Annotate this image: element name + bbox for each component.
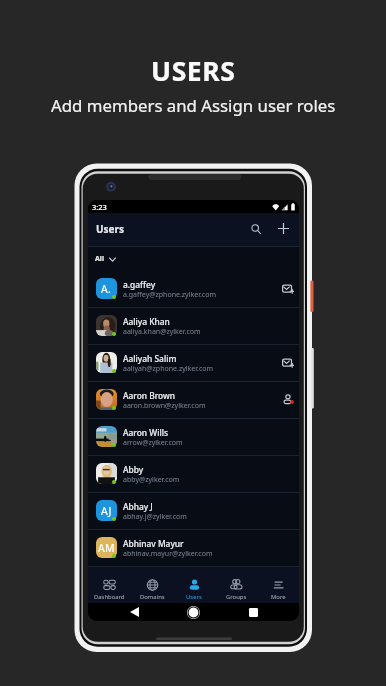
button[interactable]: Invite by email: [280, 355, 296, 371]
button[interactable]: Search: [245, 218, 267, 240]
button[interactable]: Back: [124, 603, 144, 621]
button[interactable]: AM: [88, 530, 299, 566]
button[interactable]: Invite by email: [280, 281, 296, 297]
button[interactable]: AJ: [88, 493, 299, 529]
button[interactable]: Users: [173, 570, 215, 601]
staticText: Groups: [226, 593, 247, 601]
staticText: All: [95, 254, 105, 264]
button[interactable]: A.: [88, 271, 299, 307]
staticText: AM: [98, 541, 115, 555]
staticText: Aaliyah Salim: [123, 353, 177, 364]
staticText: abby@zylker.com: [123, 475, 180, 485]
staticText: aaron.brown@zylker.com: [123, 401, 206, 411]
staticText: abhinav.mayur@zylker.com: [123, 549, 213, 559]
button[interactable]: Manage roles: [280, 392, 296, 408]
button[interactable]: Recent apps: [243, 603, 263, 621]
staticText: AJ: [101, 504, 112, 518]
staticText: abhay.j@zylker.com: [123, 512, 187, 522]
staticText: a.gaffey@zphone.zylker.com: [123, 290, 216, 300]
button[interactable]: Aaron Wills: [88, 419, 299, 455]
button[interactable]: Domains: [131, 570, 173, 601]
button[interactable]: Abby: [88, 456, 299, 492]
staticText: Aaliya Khan: [123, 316, 170, 327]
button[interactable]: Groups: [215, 570, 257, 601]
staticText: aaliya.khan@zylker.com: [123, 327, 201, 337]
button[interactable]: Aaron Brown: [88, 382, 299, 418]
staticText: Aaron Brown: [123, 390, 176, 401]
staticText: Abby: [123, 464, 144, 475]
staticText: USERS: [151, 53, 236, 89]
staticText: a.gaffey: [123, 279, 156, 290]
button[interactable]: Dashboard: [88, 570, 131, 601]
staticText: Users: [96, 222, 125, 236]
button[interactable]: Aaliyah Salim: [88, 345, 299, 381]
staticText: Add members and Assign user roles: [51, 94, 336, 117]
staticText: Dashboard: [94, 593, 125, 601]
staticText: aaliyah@zphone.zylker.com: [123, 364, 214, 374]
button[interactable]: Home: [183, 603, 203, 621]
staticText: More: [271, 593, 286, 601]
staticText: A.: [101, 282, 112, 296]
staticText: Abhinav Mayur: [123, 538, 184, 549]
staticText: Users: [186, 593, 202, 601]
staticText: Abhay J: [123, 501, 153, 512]
button[interactable]: All: [88, 247, 299, 271]
staticText: arrow@zylker.com: [123, 438, 183, 448]
staticText: 3:23: [92, 202, 107, 212]
staticText: Domains: [140, 593, 165, 601]
button[interactable]: Aaliya Khan: [88, 308, 299, 344]
staticText: Aaron Wills: [123, 427, 169, 438]
button[interactable]: More: [257, 570, 299, 601]
button[interactable]: Add user: [272, 217, 294, 239]
